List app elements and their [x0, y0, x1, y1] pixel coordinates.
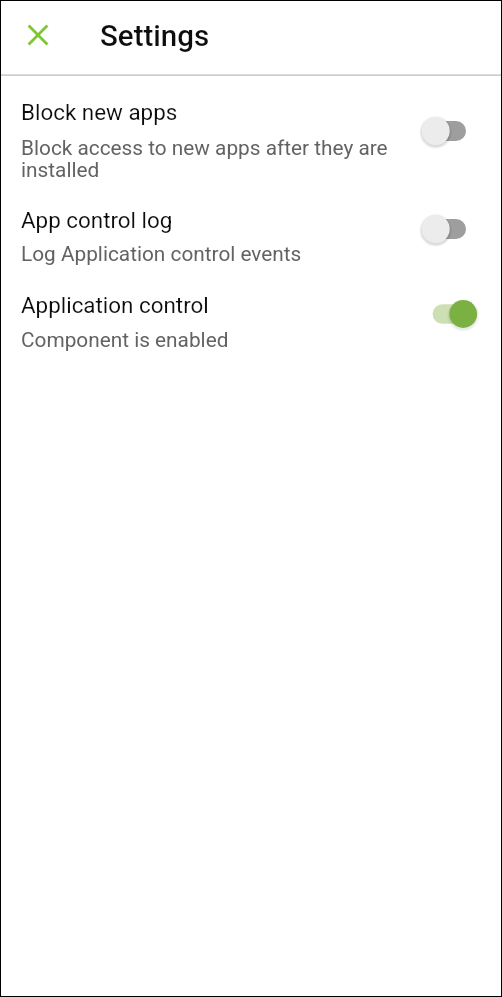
staticText: Application control: [21, 291, 209, 319]
button[interactable]: Disabled, toggle on: [419, 117, 481, 149]
button[interactable]: Enabled, toggle off: [419, 300, 481, 332]
staticText: Settings: [100, 19, 210, 54]
staticText: Block new apps: [21, 98, 178, 126]
button[interactable]: Block new apps: [1, 98, 501, 196]
staticText: Component is enabled: [21, 330, 229, 352]
staticText: App control log: [21, 206, 173, 234]
button[interactable]: Application control: [1, 291, 501, 371]
button[interactable]: Close: [10, 7, 66, 63]
staticText: Log Application control events: [21, 244, 302, 266]
button[interactable]: Disabled, toggle on: [419, 215, 481, 247]
staticText: Block access to new apps after they are …: [21, 138, 388, 182]
button[interactable]: App control log: [1, 206, 501, 286]
